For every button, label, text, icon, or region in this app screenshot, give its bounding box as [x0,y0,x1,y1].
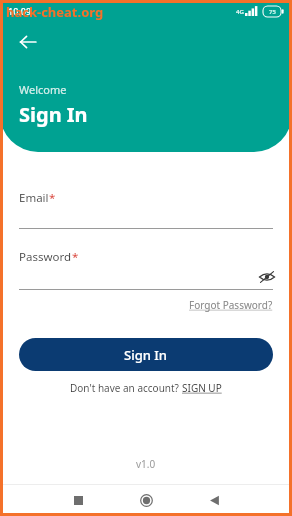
staticText: Sign In [19,101,88,128]
staticText: * [49,190,56,206]
staticText: Password [19,249,72,265]
staticText: Forgot Password? [189,298,273,312]
staticText: v1.0 [136,457,156,471]
staticText: 10:09 [8,5,32,17]
staticText: hack-cheat.org [6,3,104,21]
button[interactable]: Forgot Password? [189,298,273,312]
button[interactable]: Sign In [19,338,273,371]
button[interactable]: Home [131,485,161,515]
staticText: Don't have an account? [70,381,182,395]
button[interactable]: Recent apps [63,485,93,515]
staticText: 4G [236,8,244,16]
staticText: Sign In [124,346,168,364]
button[interactable]: Back [199,485,229,515]
button[interactable]: Don't have an account? [70,381,222,395]
staticText: SIGN UP [182,381,222,395]
staticText: Email [19,190,49,206]
button[interactable]: Back [11,25,45,59]
staticText: Welcome [19,82,67,97]
staticText: * [72,249,79,265]
staticText: 75 [269,8,276,16]
button[interactable]: Show password [256,266,278,288]
